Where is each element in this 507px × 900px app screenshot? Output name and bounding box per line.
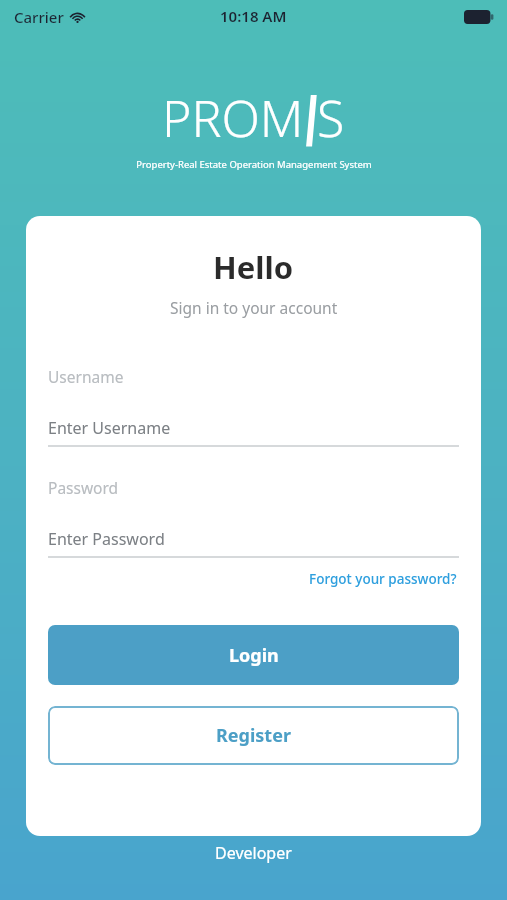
staticText: Enter Username: [48, 417, 171, 439]
staticText: Developer: [215, 842, 292, 864]
button[interactable]: Login: [48, 625, 459, 685]
button[interactable]: Enter Username: [48, 417, 459, 439]
staticText: Enter Password: [48, 528, 165, 550]
staticText: PROM: [162, 84, 304, 152]
button[interactable]: Enter Password: [48, 528, 459, 550]
staticText: Login: [229, 643, 279, 668]
staticText: Register: [216, 723, 291, 748]
staticText: Forgot your password?: [309, 570, 457, 588]
staticText: Hello: [213, 246, 294, 288]
staticText: Password: [48, 477, 119, 498]
staticText: S: [317, 84, 345, 152]
button[interactable]: Register: [48, 706, 459, 765]
staticText: Sign in to your account: [170, 297, 338, 318]
staticText: Username: [48, 366, 124, 387]
button[interactable]: Forgot your password?: [307, 568, 459, 590]
staticText: Property-Real Estate Operation Managemen…: [136, 158, 372, 171]
staticText: 10:18 AM: [220, 6, 287, 26]
staticText: Carrier: [14, 7, 64, 27]
button[interactable]: Developer: [0, 842, 507, 864]
